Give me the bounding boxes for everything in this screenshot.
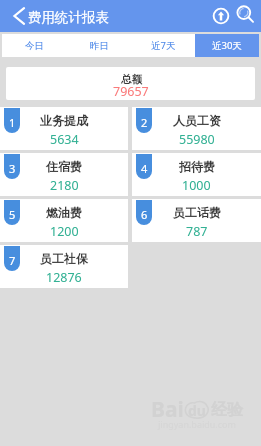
staticText: 燃油费 <box>46 205 82 220</box>
staticText: 2 <box>141 115 148 130</box>
staticText: 2180 <box>50 177 79 194</box>
button[interactable]: 近7天 <box>131 34 195 57</box>
staticText: 人员工资 <box>173 113 221 128</box>
staticText: 员工社保 <box>40 251 88 266</box>
staticText: 5 <box>9 207 16 222</box>
button[interactable]: 3 <box>0 153 128 196</box>
staticText: 1000 <box>182 177 211 194</box>
staticText: 5634 <box>50 131 79 148</box>
staticText: 1200 <box>50 223 79 240</box>
button[interactable]: 昨日 <box>67 34 131 57</box>
staticText: 近30天 <box>212 39 242 52</box>
staticText: 79657 <box>113 83 149 100</box>
button[interactable]: 4 <box>132 153 261 196</box>
staticText: 招待费 <box>179 159 215 174</box>
staticText: 总额 <box>121 73 142 86</box>
button[interactable]: 总额 <box>6 67 255 100</box>
staticText: 7 <box>9 253 16 268</box>
button[interactable]: Search <box>234 0 260 32</box>
button[interactable]: Upload <box>208 0 234 32</box>
button[interactable]: 2 <box>132 107 261 150</box>
staticText: 4 <box>141 161 148 176</box>
staticText: 今日 <box>25 40 44 52</box>
staticText: 1 <box>9 115 16 130</box>
staticText: 近7天 <box>151 39 176 52</box>
staticText: 业务提成 <box>40 113 88 128</box>
staticText: 经验 <box>211 400 243 420</box>
button[interactable]: 1 <box>0 107 128 150</box>
staticText: 787 <box>186 223 208 240</box>
button[interactable]: 5 <box>0 199 128 242</box>
staticText: 3 <box>9 161 16 176</box>
staticText: du <box>188 401 206 420</box>
button[interactable]: 7 <box>0 245 128 288</box>
button[interactable]: 6 <box>132 199 261 242</box>
staticText: 12876 <box>46 269 82 286</box>
staticText: Bai <box>151 395 184 424</box>
staticText: 住宿费 <box>46 159 82 174</box>
staticText: 55980 <box>179 131 215 148</box>
staticText: 费用统计报表 <box>28 9 109 26</box>
button[interactable]: 近30天 <box>195 34 259 57</box>
staticText: 昨日 <box>90 40 109 52</box>
staticText: 6 <box>141 207 148 222</box>
staticText: 员工话费 <box>173 205 221 220</box>
button[interactable]: Back <box>0 0 28 32</box>
button[interactable]: 今日 <box>2 34 67 57</box>
